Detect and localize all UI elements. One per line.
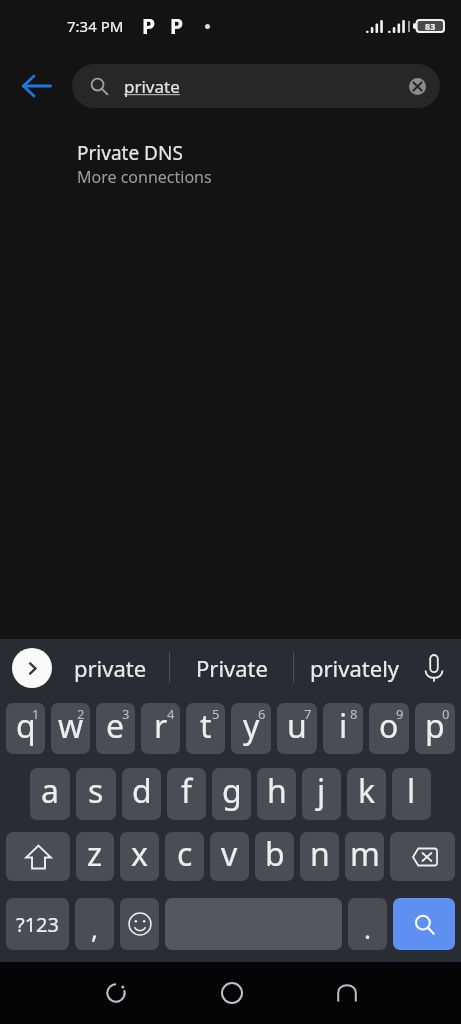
button[interactable]: z [76, 832, 114, 881]
staticText: Private [196, 653, 268, 683]
staticText: p [425, 704, 445, 748]
staticText: Private DNS [77, 140, 183, 166]
staticText: 9 [396, 705, 404, 723]
staticText: q [16, 704, 36, 748]
staticText: privately [310, 653, 400, 683]
staticText: o [379, 704, 399, 748]
button[interactable]: . [348, 898, 387, 950]
staticText: f [181, 769, 193, 813]
button[interactable]: k [347, 768, 386, 820]
button[interactable]: x [120, 832, 159, 881]
staticText: l [407, 769, 416, 813]
staticText: m [350, 832, 380, 876]
button[interactable]: Back [85, 962, 147, 1024]
button[interactable]: m [345, 832, 384, 881]
button[interactable]: Backspace [390, 832, 455, 881]
staticText: e [106, 704, 125, 748]
button[interactable]: e [96, 703, 135, 754]
staticText: More connections [77, 166, 212, 188]
button[interactable]: , [75, 898, 114, 950]
button[interactable]: Navigate up [0, 59, 74, 113]
staticText: private [74, 653, 147, 683]
staticText: 83 [425, 20, 436, 32]
button[interactable]: Search [393, 898, 455, 950]
staticText: 8 [350, 705, 358, 723]
staticText: y [243, 704, 260, 748]
staticText: 3 [122, 705, 130, 723]
button[interactable]: s [76, 768, 116, 820]
staticText: ?123 [16, 911, 59, 938]
button[interactable]: Home [201, 962, 263, 1024]
staticText: u [287, 704, 307, 748]
staticText: i [339, 704, 348, 748]
button[interactable]: b [255, 832, 294, 881]
button[interactable]: f [167, 768, 206, 820]
staticText: k [358, 769, 376, 813]
button[interactable]: private [72, 64, 440, 108]
button[interactable]: Shift [6, 832, 70, 881]
staticText: d [132, 769, 152, 813]
staticText: b [265, 832, 285, 876]
button[interactable]: ?123 [6, 898, 69, 950]
staticText: t [200, 704, 212, 748]
staticText: r [154, 704, 168, 748]
staticText: w [58, 704, 84, 748]
button[interactable]: o [369, 703, 409, 754]
button[interactable]: private [52, 639, 169, 696]
button[interactable]: Clear search [397, 66, 437, 106]
button[interactable]: Expand suggestions [12, 648, 52, 688]
button[interactable]: y [231, 703, 271, 754]
staticText: g [222, 769, 242, 813]
button[interactable]: v [210, 832, 249, 881]
button[interactable]: Emoji [120, 898, 159, 950]
staticText: 6 [258, 705, 266, 723]
button[interactable]: d [122, 768, 161, 820]
staticText: 7:34 PM [67, 16, 124, 36]
staticText: s [88, 769, 104, 813]
button[interactable]: privately [294, 639, 415, 696]
button[interactable]: l [392, 768, 431, 820]
staticText: 1 [32, 705, 40, 723]
staticText: 2 [77, 705, 85, 723]
button[interactable]: t [186, 703, 225, 754]
button[interactable]: r [141, 703, 180, 754]
staticText: 7 [304, 705, 312, 723]
button[interactable]: p [415, 703, 455, 754]
staticText: c [177, 832, 193, 876]
button[interactable]: w [51, 703, 90, 754]
staticText: , [91, 911, 98, 946]
button[interactable]: q [6, 703, 45, 754]
staticText: P [142, 12, 156, 41]
staticText: 4 [167, 705, 175, 723]
staticText: z [87, 832, 103, 876]
staticText: a [41, 769, 59, 813]
staticText: private [124, 75, 180, 98]
button[interactable]: g [212, 768, 251, 820]
button[interactable]: i [323, 703, 363, 754]
staticText: P [170, 12, 184, 41]
button[interactable]: Private DNS [0, 113, 461, 202]
button[interactable]: Voice input [415, 649, 453, 687]
button[interactable]: n [300, 832, 339, 881]
button[interactable]: Recent apps [316, 962, 378, 1024]
button[interactable]: Private [170, 639, 293, 696]
staticText: 0 [442, 705, 450, 723]
button[interactable]: h [257, 768, 296, 820]
staticText: v [221, 832, 238, 876]
staticText: x [131, 832, 148, 876]
button[interactable]: a [30, 768, 70, 820]
button[interactable]: c [165, 832, 204, 881]
staticText: h [267, 769, 287, 813]
staticText: . [364, 911, 371, 946]
button[interactable]: j [302, 768, 341, 820]
staticText: 5 [212, 705, 220, 723]
staticText: n [310, 832, 330, 876]
staticText: j [317, 769, 326, 813]
button[interactable]: u [277, 703, 317, 754]
